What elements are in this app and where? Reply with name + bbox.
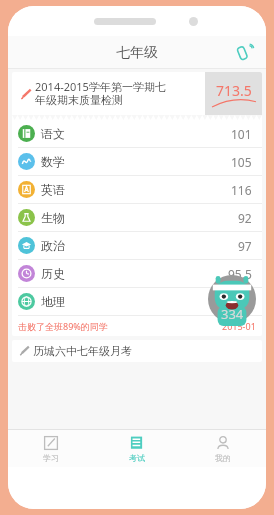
staticText: 105 (231, 154, 252, 170)
staticText: 101 (231, 126, 252, 142)
button[interactable]: 我的 (180, 430, 266, 467)
staticText: 学习 (43, 453, 59, 463)
button[interactable]: Shake to connect (230, 39, 258, 67)
staticText: 历城六中七年级月考 (33, 344, 132, 358)
button[interactable]: 生物 (12, 204, 262, 231)
staticText: 地理 (41, 294, 65, 309)
staticText: 2014-2015学年第一学期七 年级期末质量检测 (35, 79, 205, 108)
button[interactable]: 学习 (8, 430, 94, 467)
staticText: 政治 (41, 238, 65, 253)
staticText: 92 (238, 210, 252, 226)
staticText: 2015-01 (222, 320, 256, 332)
staticText: 七年级 (116, 44, 158, 62)
staticText: 116 (231, 182, 252, 198)
button[interactable]: 历城六中七年级月考 (12, 340, 262, 362)
button[interactable]: 地理 (12, 288, 262, 315)
staticText: 我的 (215, 453, 231, 463)
button[interactable]: 语文 (12, 120, 262, 147)
button[interactable]: 英语 (12, 176, 262, 203)
staticText: 考试 (129, 453, 145, 463)
staticText: 96 (238, 294, 252, 310)
staticText: 713.5 (216, 81, 252, 100)
button[interactable]: 政治 (12, 232, 262, 259)
button[interactable]: 考试 (94, 430, 180, 467)
staticText: 击败了全班89%的同学 (18, 320, 108, 332)
staticText: 生物 (41, 210, 65, 225)
staticText: 数学 (41, 154, 65, 169)
staticText: 97 (238, 238, 252, 254)
staticText: 334 (221, 305, 244, 323)
staticText: 语文 (41, 126, 65, 141)
staticText: 英语 (41, 182, 65, 197)
staticText: 95.5 (228, 266, 252, 282)
button[interactable]: 2014-2015学年第一学期七 年级期末质量检测 (12, 72, 262, 336)
staticText: 历史 (41, 266, 65, 281)
button[interactable]: 历史 (12, 260, 262, 287)
button[interactable]: 数学 (12, 148, 262, 175)
